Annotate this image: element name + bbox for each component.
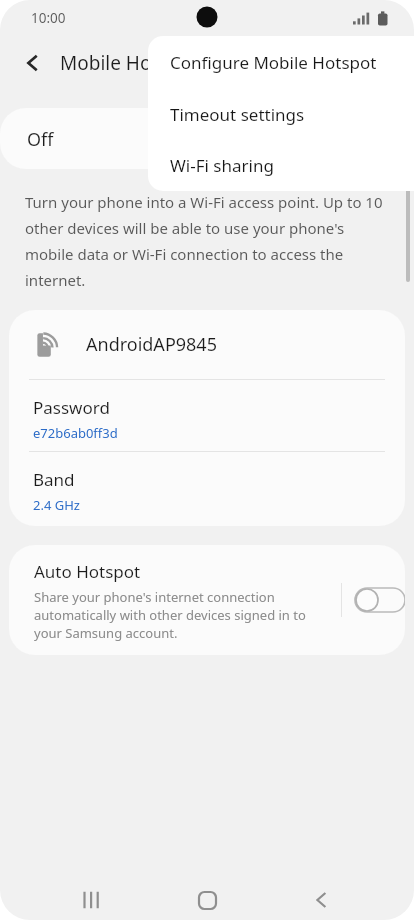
staticText: Band	[33, 468, 75, 491]
button[interactable]: AndroidAP9845	[9, 310, 405, 379]
staticText: Timeout settings	[170, 103, 305, 126]
staticText: 10:00	[31, 9, 66, 27]
button[interactable]: Recent apps	[68, 876, 116, 920]
button[interactable]: Off	[0, 108, 398, 169]
staticText: e72b6ab0ff3d	[33, 424, 118, 442]
button[interactable]: Configure Mobile Hotspot	[148, 36, 414, 89]
staticText: Wi-Fi sharing	[170, 154, 274, 177]
staticText: Password	[33, 396, 110, 419]
button[interactable]: Auto Hotspot switch, off	[354, 587, 405, 613]
button[interactable]: Wi-Fi sharing	[148, 140, 414, 191]
button[interactable]: Back	[298, 876, 346, 920]
button[interactable]: Band	[9, 452, 405, 526]
staticText: Share your phone's internet connection a…	[34, 588, 322, 642]
button[interactable]: Auto Hotspot	[9, 545, 405, 655]
staticText: Off	[27, 127, 54, 152]
staticText: 2.4 GHz	[33, 496, 80, 514]
staticText: AndroidAP9845	[86, 332, 217, 357]
staticText: Turn your phone into a Wi-Fi access poin…	[25, 192, 383, 291]
button[interactable]: Home	[183, 876, 231, 920]
button[interactable]: Timeout settings	[148, 89, 414, 140]
staticText: Auto Hotspot	[34, 560, 141, 583]
staticText: Mobile Hotspot	[60, 50, 198, 76]
staticText: Configure Mobile Hotspot	[170, 51, 377, 74]
button[interactable]: Navigate up	[13, 43, 53, 83]
button[interactable]: Password	[9, 380, 405, 451]
